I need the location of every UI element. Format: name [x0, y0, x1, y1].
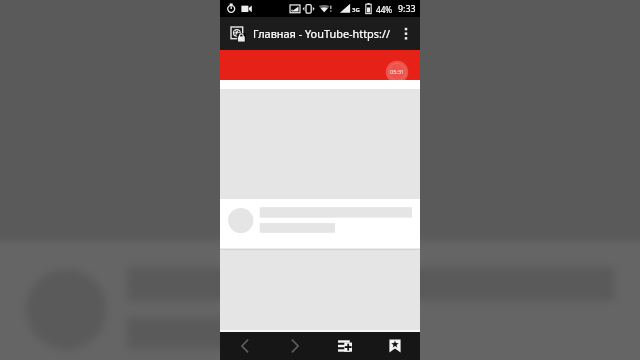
staticText: 3G: [352, 6, 360, 14]
button[interactable]: Tabs: [320, 332, 370, 360]
staticText: 05:31: [390, 68, 405, 76]
staticText: Главная - YouTube-https://: [253, 26, 391, 41]
button[interactable]: Site security info: [226, 18, 250, 51]
staticText: 9:33: [398, 3, 416, 15]
button[interactable]: Bookmarks: [370, 332, 420, 360]
button[interactable]: Back: [220, 332, 270, 360]
button[interactable]: More options: [394, 17, 418, 50]
staticText: 44%: [376, 4, 393, 15]
button[interactable]: Forward: [270, 332, 320, 360]
